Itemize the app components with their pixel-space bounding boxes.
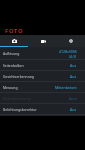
staticText: Aus — [70, 63, 77, 68]
button[interactable]: Gesichtserkennung — [0, 71, 85, 82]
button[interactable]: Messung — [0, 82, 85, 93]
staticText: Aus — [70, 107, 77, 112]
staticText: Auto — [69, 96, 77, 101]
staticText: FOTO — [5, 27, 24, 35]
button[interactable]: Auflösung — [0, 47, 85, 60]
button[interactable]: Video — [29, 35, 57, 47]
staticText: Aus — [70, 74, 77, 79]
staticText: 4128x3096 — [59, 49, 77, 54]
staticText: Gesichtserkennung — [3, 74, 34, 79]
staticText: Auflösung — [3, 51, 20, 56]
staticText: Seitenbalken — [3, 63, 24, 68]
staticText: (4:3) — [69, 54, 77, 59]
button[interactable]: Seitenbalken — [0, 60, 85, 71]
staticText: Belichtungskorrektur — [3, 107, 37, 112]
staticText: Messung — [3, 85, 18, 90]
staticText: Mittenbetont — [55, 85, 77, 90]
button[interactable]: Einstellungen — [57, 35, 85, 47]
button[interactable]: Foto — [0, 35, 29, 47]
staticText: Bildstabilisierung — [3, 96, 31, 101]
button[interactable]: Belichtungskorrektur — [0, 104, 85, 115]
button[interactable]: Bildstabilisierung — [0, 93, 85, 104]
